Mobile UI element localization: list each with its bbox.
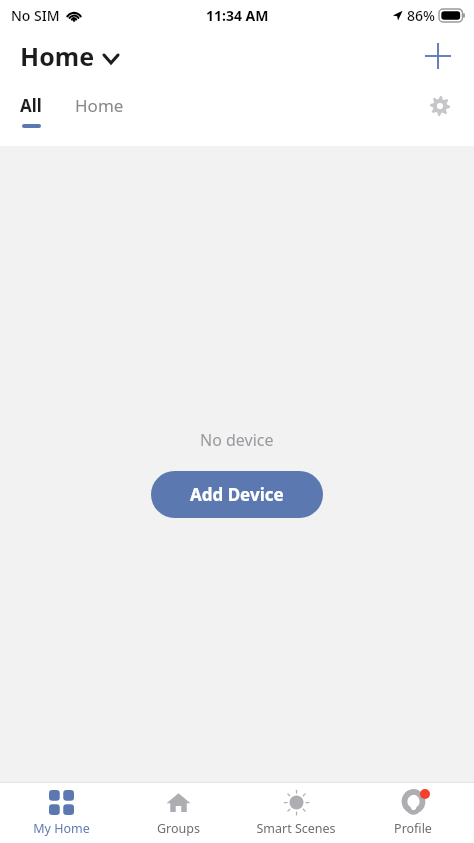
button[interactable]: My Home xyxy=(5,783,117,843)
staticText: All xyxy=(20,94,42,117)
staticText: My Home xyxy=(33,820,90,837)
staticText: Smart Scenes xyxy=(256,820,336,837)
button[interactable]: All xyxy=(17,94,45,128)
button[interactable]: Add device xyxy=(418,36,458,76)
staticText: Add Device xyxy=(190,483,284,506)
staticText: Groups xyxy=(157,820,200,837)
staticText: Home xyxy=(20,39,95,73)
button[interactable]: Profile xyxy=(357,783,469,843)
button[interactable]: Settings xyxy=(422,88,458,124)
staticText: Profile xyxy=(394,820,432,837)
staticText: No device xyxy=(200,429,274,451)
button[interactable]: Home xyxy=(18,35,120,77)
button[interactable]: Home xyxy=(72,94,127,117)
button[interactable]: Groups xyxy=(122,783,234,843)
button[interactable]: Add Device xyxy=(151,471,323,518)
button[interactable]: Smart Scenes xyxy=(240,783,352,843)
staticText: 86% xyxy=(407,6,435,25)
staticText: Home xyxy=(75,94,124,117)
staticText: No SIM xyxy=(11,6,60,25)
staticText: 11:34 AM xyxy=(206,6,269,25)
